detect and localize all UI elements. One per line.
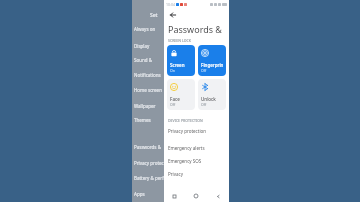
staticText: Fingerprint xyxy=(201,62,224,68)
button[interactable]: Always on display xyxy=(132,22,164,36)
staticText: Sound & vibration xyxy=(134,57,164,63)
button[interactable]: Fingerprint xyxy=(198,45,226,76)
button[interactable]: Apps xyxy=(132,187,164,201)
staticText: SCREEN LOCK xyxy=(168,38,191,43)
button[interactable]: Passwords & xyxy=(132,140,164,154)
button[interactable]: Home xyxy=(185,190,207,202)
button[interactable]: Display xyxy=(132,39,164,53)
staticText: Emergency alerts xyxy=(168,145,205,151)
button[interactable]: Privacy protec xyxy=(132,156,164,170)
button[interactable]: Face unlock xyxy=(167,79,195,110)
staticText: Notifications xyxy=(134,72,161,78)
staticText: On xyxy=(170,68,175,73)
staticText: Privacy protec xyxy=(134,160,164,166)
staticText: DEVICE PROTECTION xyxy=(168,118,203,123)
button[interactable]: Sound & vibration xyxy=(132,53,164,67)
button[interactable]: Back xyxy=(207,190,229,202)
button[interactable]: Battery & perf xyxy=(132,171,164,185)
button[interactable]: Emergency alerts xyxy=(164,141,229,154)
staticText: Face unlock xyxy=(170,96,193,102)
staticText: Privacy xyxy=(168,171,184,177)
staticText: Always on display xyxy=(134,26,164,32)
button[interactable]: Notifications xyxy=(132,68,164,82)
button[interactable]: Privacy xyxy=(164,167,229,180)
staticText: Off xyxy=(201,68,207,73)
button[interactable]: Screen lock xyxy=(167,45,195,76)
staticText: Set xyxy=(150,12,158,19)
staticText: Off xyxy=(170,102,176,107)
staticText: Display xyxy=(134,43,150,49)
staticText: Wallpaper xyxy=(134,103,156,109)
staticText: Screen lock xyxy=(170,62,193,68)
staticText: Off xyxy=(201,102,207,107)
staticText: Unlock with xyxy=(201,96,224,102)
staticText: Passwords & xyxy=(134,144,161,150)
button[interactable]: Back xyxy=(166,8,180,22)
button[interactable]: Wallpaper xyxy=(132,99,164,113)
staticText: Privacy protection password xyxy=(168,128,225,134)
staticText: Emergency SOS xyxy=(168,158,202,164)
button[interactable]: Home screen xyxy=(132,83,164,97)
button[interactable]: Unlock with xyxy=(198,79,226,110)
staticText: Passwords & security xyxy=(168,23,229,35)
button[interactable]: Recents xyxy=(164,190,185,202)
staticText: 10:04 xyxy=(166,2,175,7)
staticText: Themes xyxy=(134,117,151,123)
staticText: Apps xyxy=(134,191,145,197)
staticText: Battery & perf xyxy=(134,175,164,181)
button[interactable]: Emergency SOS xyxy=(164,154,229,167)
button[interactable]: Themes xyxy=(132,113,164,127)
button[interactable]: Privacy protection password xyxy=(164,124,229,137)
staticText: Home screen xyxy=(134,87,162,93)
